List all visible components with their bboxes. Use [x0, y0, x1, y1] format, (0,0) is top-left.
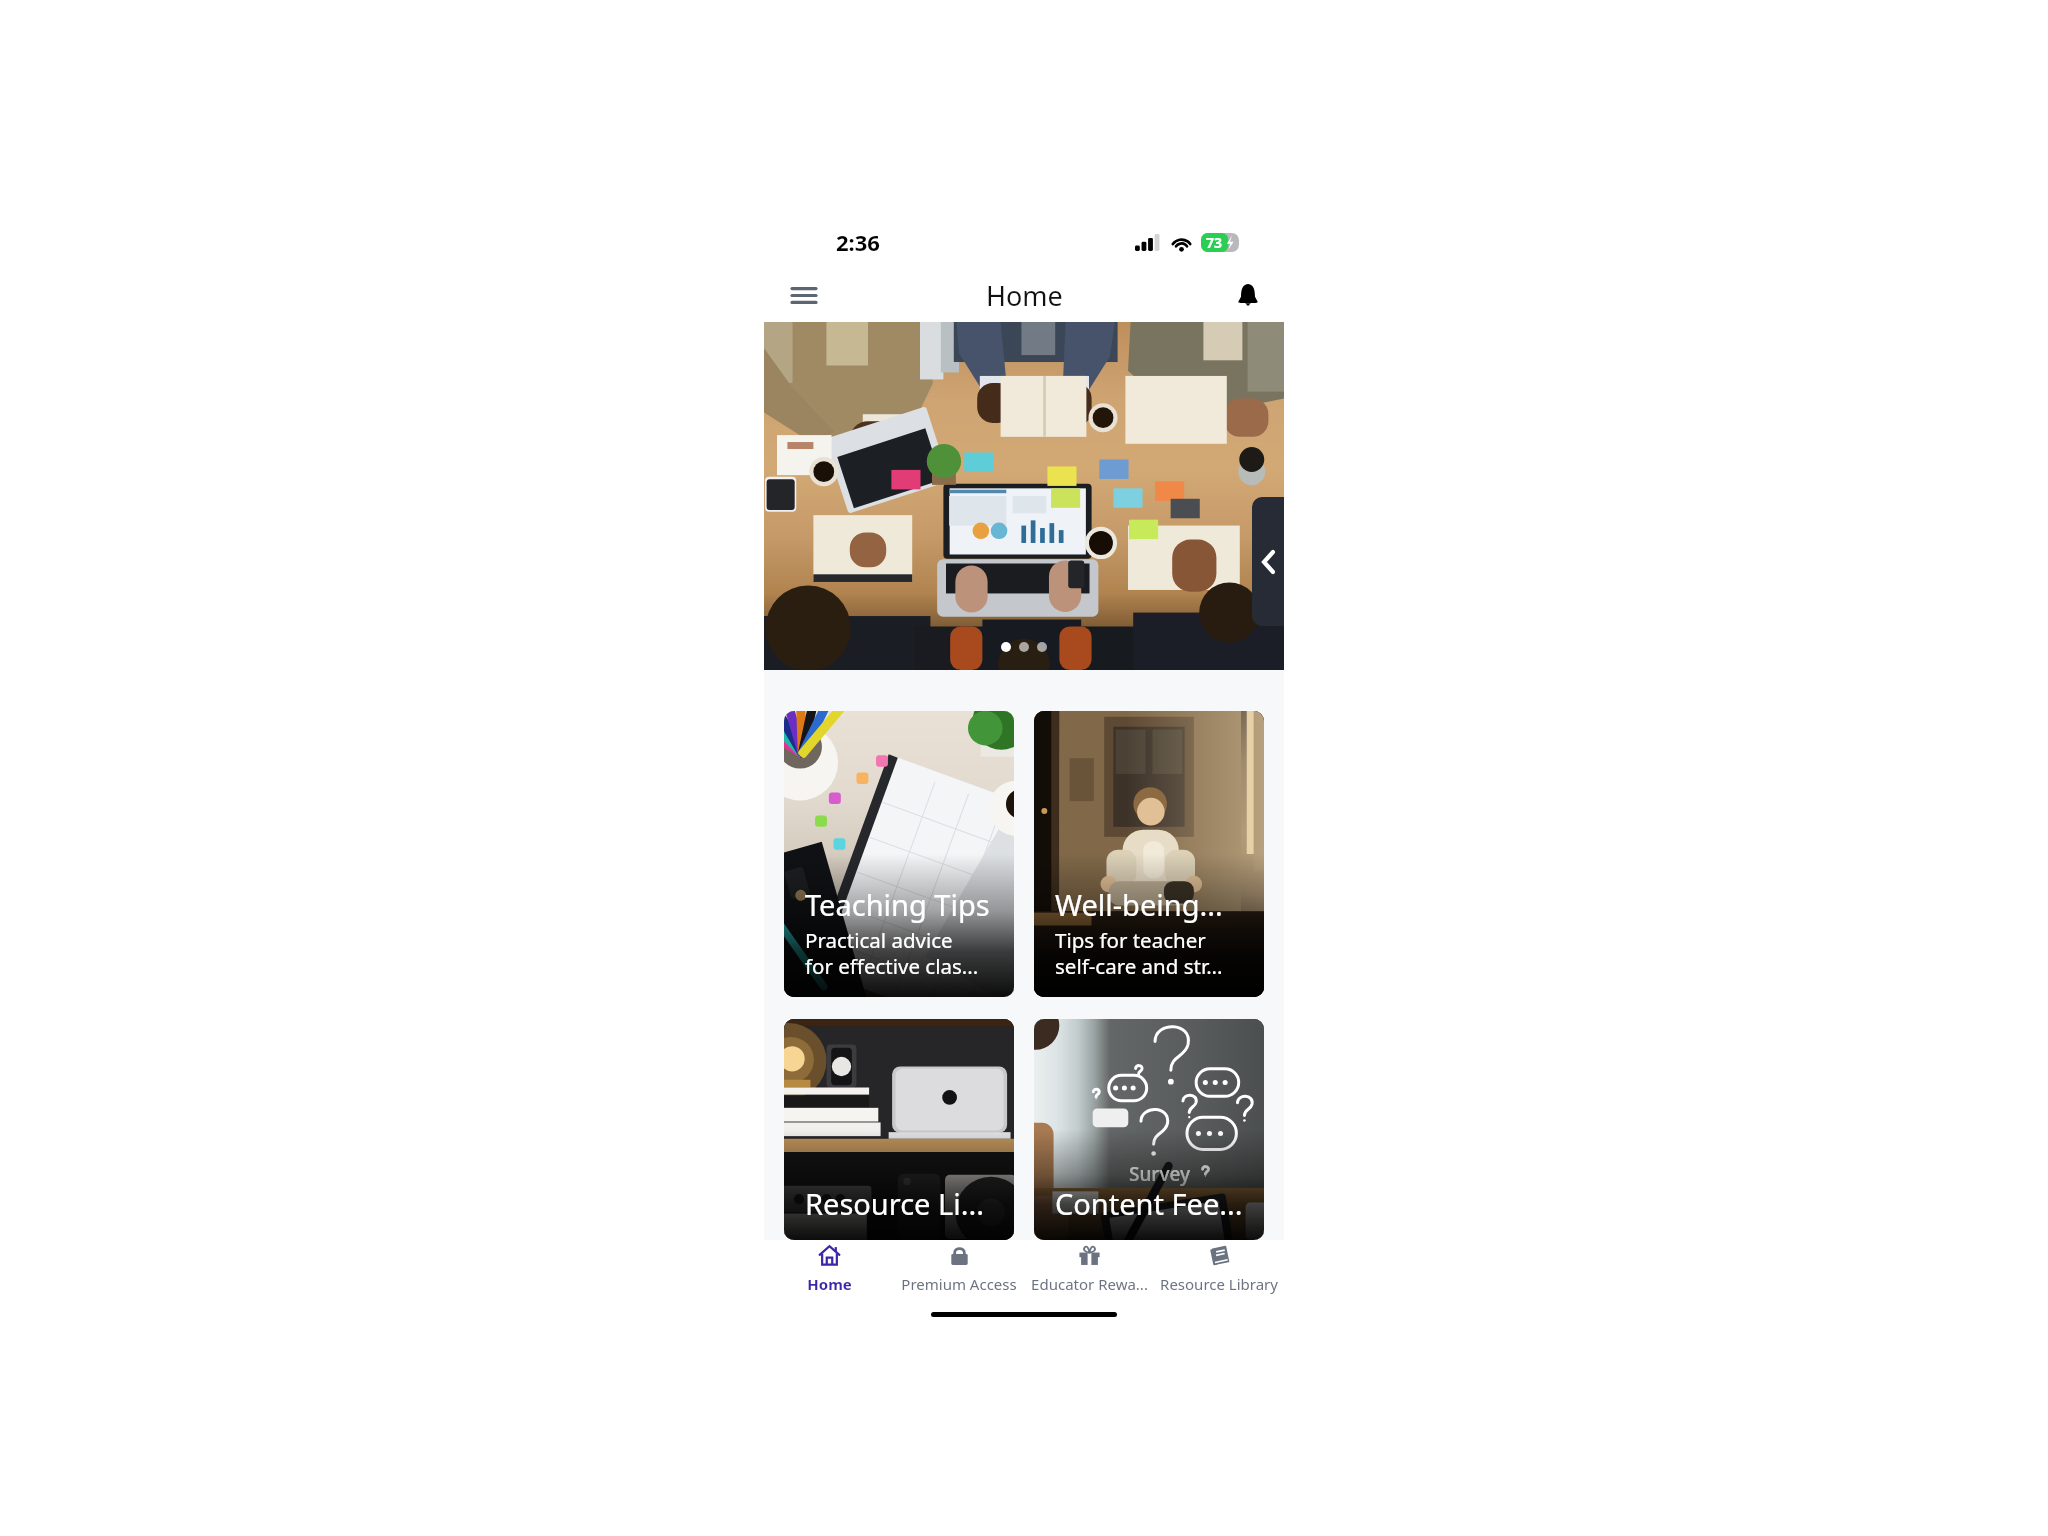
button[interactable]: Go to slide 1 [1001, 642, 1011, 652]
button[interactable]: Resource Library [1154, 1240, 1284, 1298]
staticText: Home [807, 1274, 852, 1294]
staticText: Premium Access [901, 1274, 1017, 1294]
staticText: 2:36 [836, 227, 880, 257]
button[interactable]: Go to slide 2 [1019, 642, 1029, 652]
staticText: 73 [1206, 233, 1223, 252]
staticText: Content Fee... [1055, 1184, 1243, 1223]
button[interactable]: Menu [782, 273, 826, 317]
staticText: Resource Library [1160, 1274, 1278, 1294]
button[interactable]: Well-being... [1034, 711, 1264, 997]
staticText: Survey [1129, 1161, 1190, 1187]
staticText: Educator Rewa... [1031, 1274, 1148, 1294]
staticText: Home [986, 277, 1063, 314]
button[interactable]: Previous [1252, 497, 1284, 626]
button[interactable]: Survey [1034, 1019, 1264, 1240]
button[interactable]: Teaching Tips [784, 711, 1014, 997]
button[interactable]: Notifications [1228, 275, 1268, 315]
button[interactable]: Resource Li... [784, 1019, 1014, 1240]
staticText: Well-being... [1055, 885, 1223, 924]
staticText: Resource Li... [805, 1184, 984, 1223]
button[interactable]: Educator Rewa... [1024, 1240, 1154, 1298]
staticText: Teaching Tips [805, 885, 990, 924]
button[interactable]: Go to slide 3 [1037, 642, 1047, 652]
staticText: Practical advice for effective clas... [805, 926, 979, 980]
button[interactable]: Home [764, 1240, 894, 1298]
staticText: Tips for teacher self-care and str... [1055, 926, 1223, 980]
button[interactable]: Premium Access [894, 1240, 1024, 1298]
